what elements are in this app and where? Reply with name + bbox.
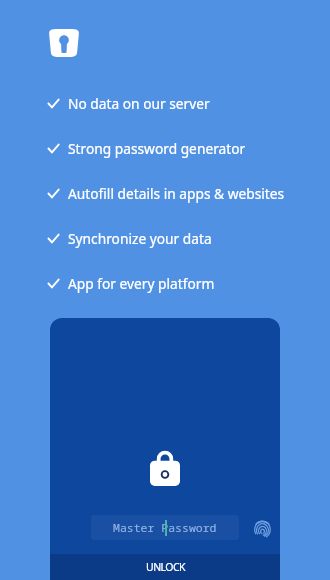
staticText: Autofill details in apps & websites xyxy=(68,184,285,203)
staticText: No data on our server xyxy=(68,94,210,113)
staticText: Synchronize your data xyxy=(68,229,212,248)
staticText: UNLOCK xyxy=(146,560,185,574)
staticText: Strong password generator xyxy=(68,139,246,158)
staticText: App for every platform xyxy=(68,274,215,293)
button[interactable]: Fingerprint unlock xyxy=(250,516,274,540)
button[interactable]: Master Password xyxy=(91,515,239,540)
staticText: Master Password xyxy=(113,520,217,536)
button[interactable]: UNLOCK xyxy=(50,554,280,580)
